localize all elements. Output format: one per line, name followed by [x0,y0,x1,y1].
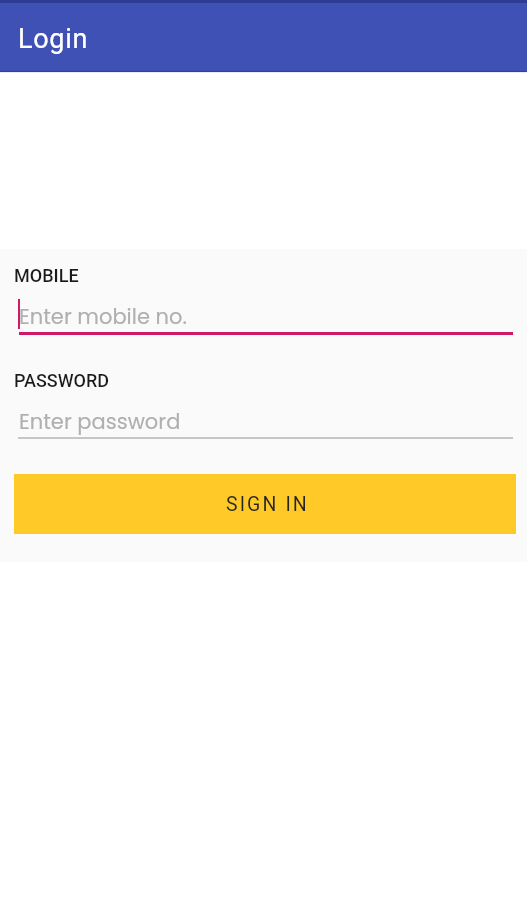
staticText: Enter mobile no. [19,302,187,331]
button[interactable]: Mobile number field [14,293,517,336]
button[interactable]: Password field [14,399,517,440]
staticText: MOBILE [14,265,79,286]
staticText: Enter password [19,407,181,436]
staticText: SIGN IN [226,493,309,516]
staticText: PASSWORD [14,370,109,391]
button[interactable]: SIGN IN [14,474,516,534]
staticText: Login [18,23,89,55]
